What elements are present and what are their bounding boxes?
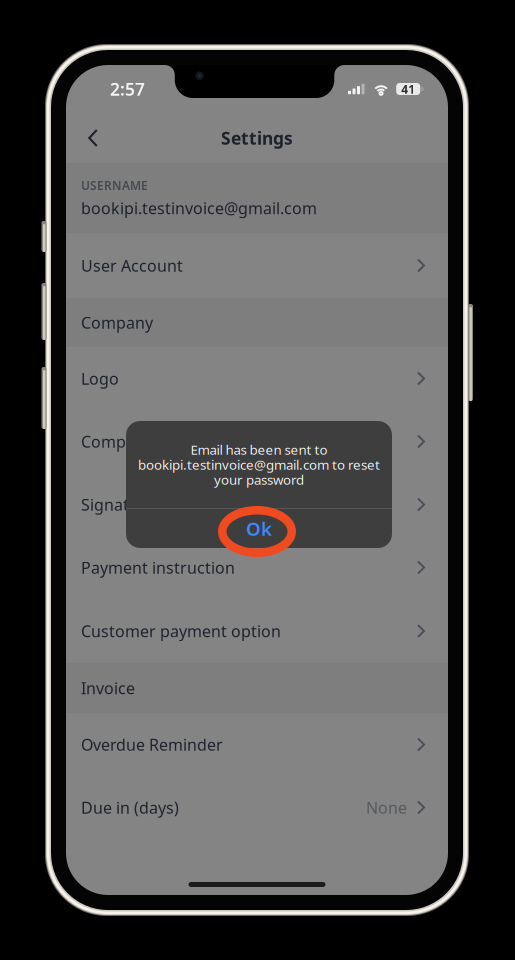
staticText: Overdue Reminder <box>81 734 223 755</box>
staticText: Settings <box>221 126 293 149</box>
button[interactable]: Customer payment option <box>66 599 448 663</box>
staticText: bookipi.testinvoice@gmail.com <box>81 197 317 218</box>
staticText: 2:57 <box>110 77 145 100</box>
staticText: bookipi.testinvoice@gmail.com to reset <box>138 456 380 473</box>
staticText: Company details <box>81 431 207 452</box>
staticText: USERNAME <box>81 177 148 193</box>
button[interactable]: Payment instruction <box>66 536 448 599</box>
staticText: Email has been sent to <box>190 441 327 458</box>
button[interactable]: Overdue Reminder <box>66 713 448 776</box>
button[interactable]: User Account <box>66 233 448 298</box>
staticText: None <box>366 797 407 818</box>
staticText: Company <box>81 312 153 333</box>
button[interactable]: Back <box>71 116 115 160</box>
staticText: User Account <box>81 255 183 276</box>
staticText: Ok <box>246 516 272 541</box>
button[interactable]: Signature <box>66 473 448 536</box>
staticText: 41 <box>401 81 415 97</box>
staticText: Invoice <box>81 677 135 699</box>
staticText: Due in (days) <box>81 797 179 818</box>
button[interactable]: Ok <box>126 509 392 548</box>
button[interactable]: Logo <box>66 347 448 410</box>
button[interactable]: Due in (days) <box>66 776 448 839</box>
staticText: Logo <box>81 368 119 389</box>
staticText: Payment instruction <box>81 557 235 578</box>
staticText: Signature <box>81 494 154 515</box>
button[interactable]: Company details <box>66 410 448 473</box>
staticText: Customer payment option <box>81 620 281 642</box>
staticText: your password <box>214 471 304 488</box>
